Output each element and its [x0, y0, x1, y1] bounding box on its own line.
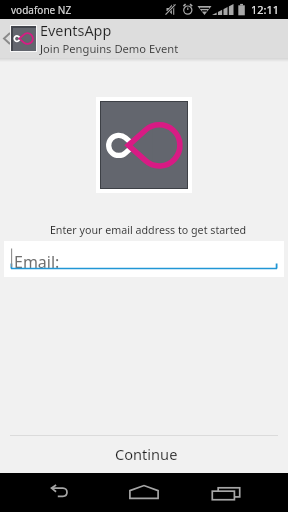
- button[interactable]: Recent apps: [201, 473, 249, 512]
- button[interactable]: Back: [36, 473, 84, 512]
- button[interactable]: Continue: [0, 435, 288, 473]
- staticText: EventsApp: [40, 21, 112, 41]
- button[interactable]: Home: [120, 473, 168, 512]
- staticText: vodafone NZ: [11, 3, 72, 17]
- staticText: 12:11: [251, 2, 280, 17]
- staticText: Enter your email address to get started: [4, 223, 288, 238]
- staticText: Continue: [115, 444, 178, 464]
- button[interactable]: Email:: [4, 241, 284, 277]
- button[interactable]: Navigate up: [0, 19, 179, 58]
- staticText: Join Penguins Demo Event: [40, 41, 179, 56]
- staticText: Email:: [14, 251, 60, 273]
